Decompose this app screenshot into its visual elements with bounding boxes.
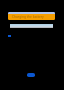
- button[interactable]: Charging the battery: [8, 12, 55, 20]
- staticText: Charging the battery: [12, 15, 44, 19]
- button[interactable]: Continue: [27, 73, 35, 77]
